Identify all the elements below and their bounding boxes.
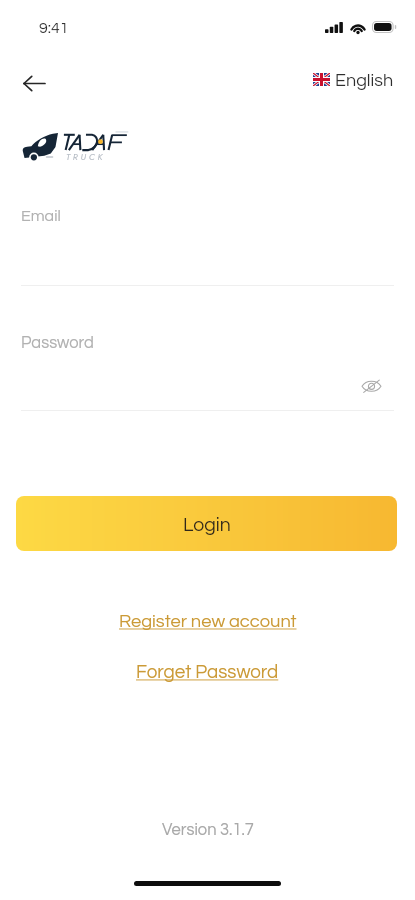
staticText: 9:41 [39, 20, 69, 36]
button[interactable]: Show password [354, 373, 388, 399]
staticText: English [335, 71, 394, 90]
staticText: Forget Password [136, 663, 279, 682]
staticText: Email [21, 208, 61, 224]
staticText: TRUCK [66, 150, 106, 163]
staticText: Version 3.1.7 [162, 821, 254, 838]
staticText: Login [183, 515, 231, 535]
staticText: Password [21, 334, 94, 351]
button[interactable]: Register new account [108, 604, 308, 638]
button[interactable]: Forget Password [125, 655, 290, 689]
button[interactable]: Back [12, 63, 56, 103]
button[interactable]: Login [16, 496, 397, 551]
staticText: Register new account [119, 612, 297, 631]
button[interactable]: English [313, 71, 394, 90]
